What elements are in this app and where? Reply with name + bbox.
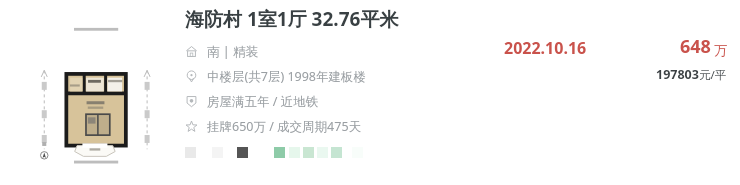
button[interactable]: 挂牌650万 / 成交周期475天 [185,114,490,139]
staticText: 中楼层(共7层) 1998年建板楼 [207,68,367,85]
staticText: 648 [680,34,711,59]
staticText: 挂牌650万 / 成交周期475天 [207,118,362,135]
staticText: 房屋满五年 / 近地铁 [207,93,319,110]
staticText: 元/平 [699,67,727,83]
button[interactable]: 海防村 1室1厅 32.76平米 [185,6,399,32]
button[interactable]: 2022.10.16 [504,37,587,59]
button[interactable]: 房屋满五年 / 近地铁 [185,89,490,114]
staticText: 197803 [656,66,699,83]
staticText: 南 | 精装 [207,43,258,60]
button[interactable]: 户型图 [6,4,176,181]
staticText: 万 [714,42,727,58]
button[interactable]: 南 | 精装 [185,39,490,64]
button[interactable]: 中楼层(共7层) 1998年建板楼 [185,64,490,89]
